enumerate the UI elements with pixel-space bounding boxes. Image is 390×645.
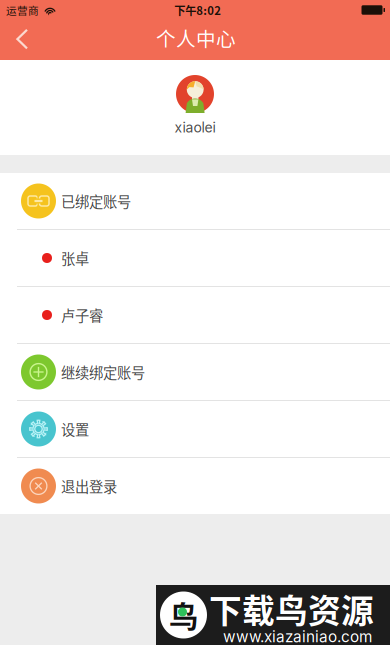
staticText: 个人中心 bbox=[156, 24, 236, 52]
staticText: 设置 bbox=[61, 419, 89, 439]
staticText: 张卓 bbox=[61, 248, 89, 268]
button[interactable]: 退出登录 bbox=[0, 458, 390, 514]
staticText: 运营商 bbox=[6, 2, 39, 18]
button[interactable]: 继续绑定账号 bbox=[0, 344, 390, 400]
staticText: xiaolei bbox=[174, 119, 215, 136]
staticText: 下载鸟资源 bbox=[209, 585, 374, 632]
button[interactable]: 设置 bbox=[0, 401, 390, 457]
staticText: 退出登录 bbox=[61, 476, 117, 496]
button[interactable]: 卢子睿 bbox=[0, 287, 390, 343]
staticText: 继续绑定账号 bbox=[61, 362, 145, 382]
staticText: www.xiazainiao.com bbox=[223, 627, 372, 645]
staticText: 已绑定账号 bbox=[61, 191, 131, 211]
staticText: 卢子睿 bbox=[61, 305, 103, 325]
button[interactable]: 已绑定账号 bbox=[0, 173, 390, 229]
button[interactable]: 张卓 bbox=[0, 230, 390, 286]
staticText: 下午8:02 bbox=[174, 2, 221, 18]
staticText: 鸟 bbox=[169, 594, 198, 636]
button[interactable]: Back bbox=[0, 20, 41, 60]
